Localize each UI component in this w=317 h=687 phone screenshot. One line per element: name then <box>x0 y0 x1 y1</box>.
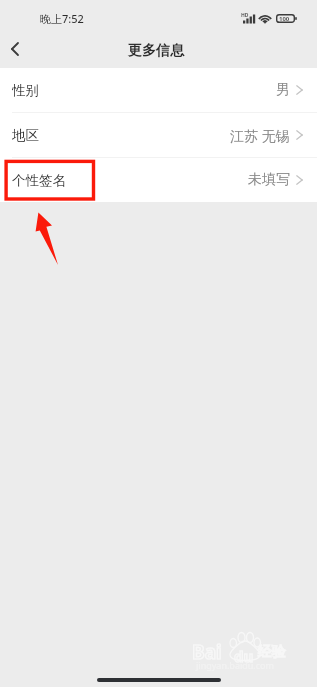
staticText: 性别 <box>12 82 39 99</box>
staticText: 江苏 无锡 <box>230 126 290 145</box>
staticText: 晚上7:52 <box>40 11 84 26</box>
staticText: 经验 <box>258 643 286 661</box>
staticText: 未填写 <box>248 171 290 189</box>
button[interactable]: Back <box>0 34 30 64</box>
staticText: 更多信息 <box>128 42 184 60</box>
staticText: 100 <box>279 15 290 23</box>
staticText: du <box>234 646 254 666</box>
staticText: Bai <box>192 639 222 665</box>
staticText: 地区 <box>12 127 39 144</box>
staticText: HD <box>241 12 249 19</box>
button[interactable]: 个性签名 <box>0 158 317 202</box>
staticText: 个性签名 <box>12 172 66 189</box>
button[interactable]: 地区 <box>0 113 317 157</box>
staticText: 男 <box>276 81 290 99</box>
button[interactable]: 性别 <box>0 68 317 112</box>
